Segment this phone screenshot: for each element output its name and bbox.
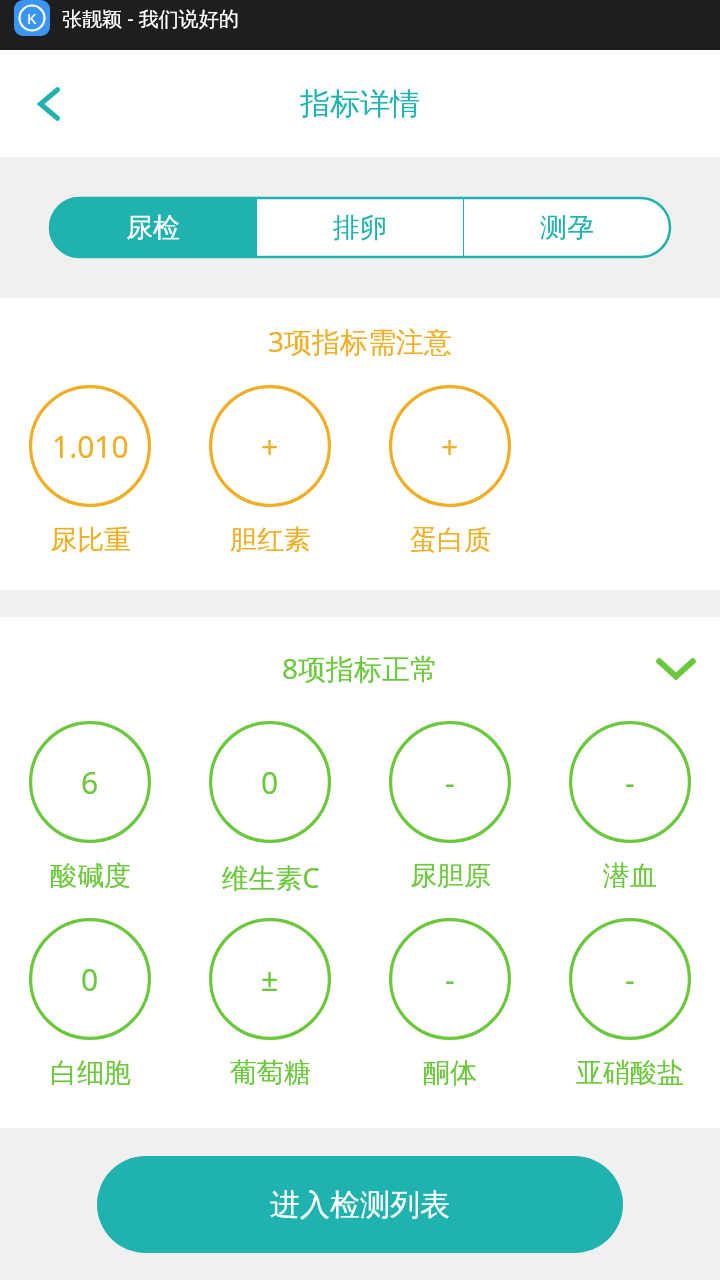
staticText: +: [261, 426, 279, 467]
staticText: 尿检: [126, 211, 180, 245]
staticText: 6: [81, 762, 99, 803]
button[interactable]: -: [569, 918, 691, 1040]
button[interactable]: -: [569, 721, 691, 843]
staticText: 尿胆原: [410, 859, 491, 893]
staticText: 1.010: [52, 426, 129, 467]
staticText: 排卵: [333, 211, 387, 245]
staticText: 张靓颖 - 我们说好的: [62, 5, 239, 32]
staticText: 尿比重: [50, 523, 131, 557]
staticText: K: [27, 8, 37, 28]
button[interactable]: 1.010: [29, 385, 151, 507]
button[interactable]: Back: [22, 76, 78, 132]
staticText: 胆红素: [230, 523, 311, 557]
staticText: ±: [261, 959, 279, 1000]
button[interactable]: +: [389, 385, 511, 507]
button[interactable]: 测孕: [464, 198, 670, 257]
staticText: 0: [81, 959, 99, 1000]
button[interactable]: 尿检: [50, 198, 256, 257]
staticText: 酸碱度: [50, 859, 131, 893]
staticText: 白细胞: [50, 1056, 131, 1090]
staticText: 8项指标正常: [282, 649, 439, 687]
button[interactable]: ±: [209, 918, 331, 1040]
button[interactable]: 0: [29, 918, 151, 1040]
button[interactable]: 6: [29, 721, 151, 843]
button[interactable]: +: [209, 385, 331, 507]
staticText: 3项指标需注意: [268, 322, 453, 360]
staticText: -: [625, 762, 635, 803]
staticText: -: [445, 762, 455, 803]
button[interactable]: 0: [209, 721, 331, 843]
button[interactable]: -: [389, 721, 511, 843]
button[interactable]: 排卵: [257, 198, 463, 257]
staticText: 潜血: [603, 859, 657, 893]
staticText: 亚硝酸盐: [576, 1056, 684, 1090]
staticText: 进入检测列表: [270, 1186, 450, 1224]
staticText: +: [441, 426, 459, 467]
staticText: 葡萄糖: [230, 1056, 311, 1090]
staticText: 维生素C: [221, 859, 320, 896]
staticText: 酮体: [423, 1056, 477, 1090]
staticText: 测孕: [540, 211, 594, 245]
button[interactable]: 进入检测列表: [97, 1156, 623, 1253]
staticText: 0: [261, 762, 279, 803]
button[interactable]: Collapse: [648, 640, 704, 696]
button[interactable]: -: [389, 918, 511, 1040]
staticText: -: [625, 959, 635, 1000]
staticText: 指标详情: [300, 85, 420, 123]
staticText: 蛋白质: [410, 523, 491, 557]
staticText: -: [445, 959, 455, 1000]
